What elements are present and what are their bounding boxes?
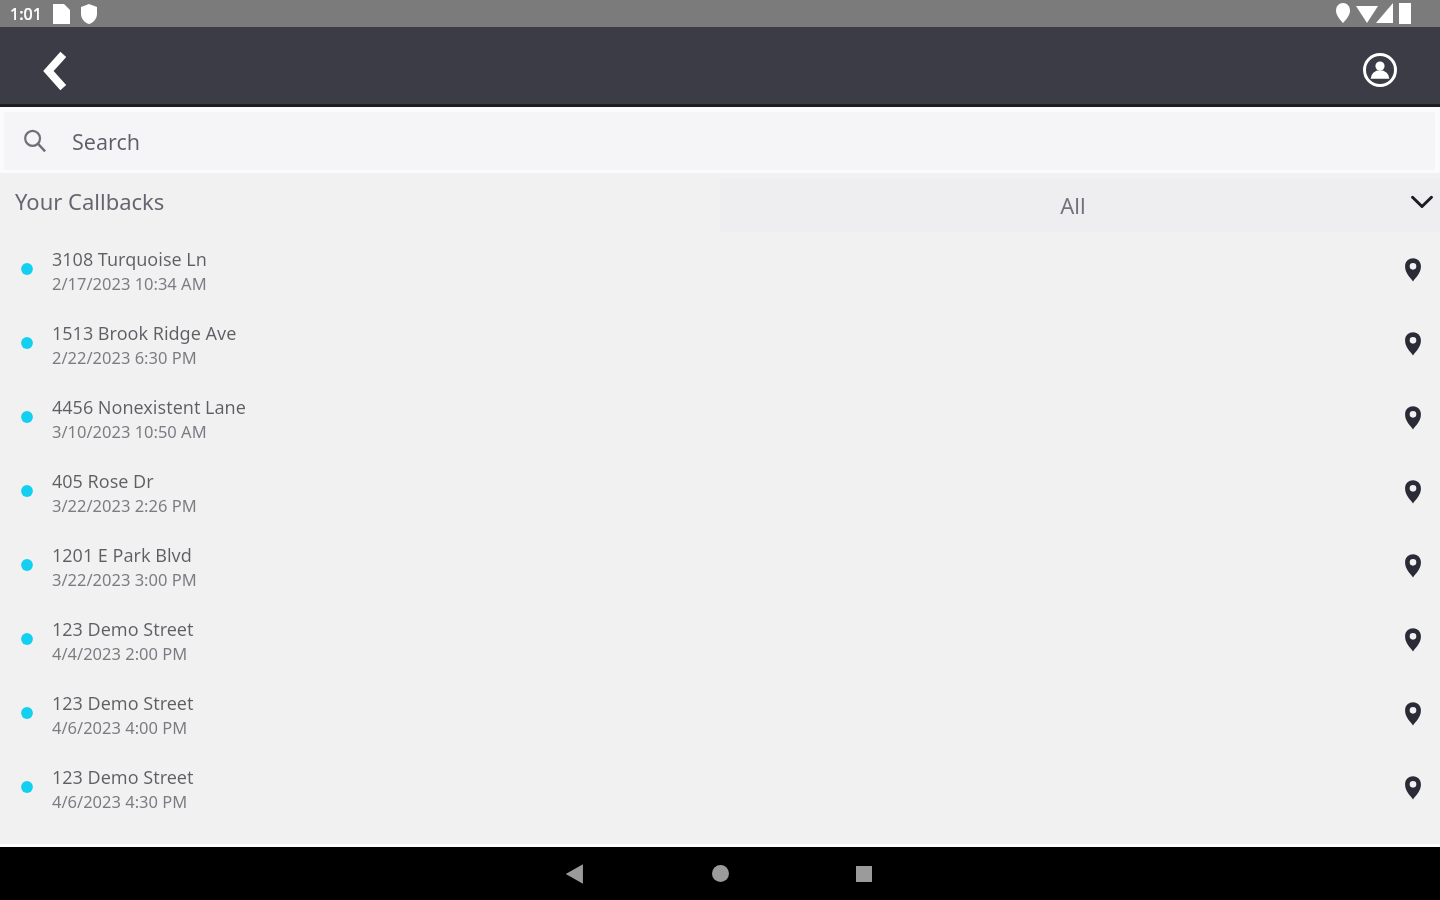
button[interactable]: Show on map [1390,394,1436,440]
staticText: 123 Demo Street [52,765,194,789]
button[interactable]: All [720,179,1440,232]
button[interactable]: 123 Demo Street [0,602,1440,676]
button[interactable]: Show on map [1390,542,1436,588]
staticText: 4/6/2023 4:30 PM [52,790,188,812]
button[interactable]: 4456 Nonexistent Lane [0,380,1440,454]
staticText: Your Callbacks [15,186,165,216]
staticText: 4/4/2023 2:00 PM [52,642,188,664]
button[interactable]: 3108 Turquoise Ln [0,232,1440,306]
button[interactable]: Show on map [1390,468,1436,514]
button[interactable]: Show on map [1390,690,1436,736]
staticText: 1201 E Park Blvd [52,543,192,567]
staticText: 3/22/2023 3:00 PM [52,568,197,590]
button[interactable]: Show on map [1390,246,1436,292]
button[interactable]: Back [28,43,84,99]
staticText: 4456 Nonexistent Lane [52,395,246,419]
staticText: 405 Rose Dr [52,469,154,493]
staticText: All [1060,190,1086,220]
button[interactable]: Account [1355,45,1405,95]
button[interactable]: Back [546,847,606,900]
staticText: 123 Demo Street [52,691,194,715]
staticText: 1:01 [10,3,42,25]
button[interactable]: 1513 Brook Ridge Ave [0,306,1440,380]
button[interactable]: Show on map [1390,616,1436,662]
staticText: 2/22/2023 6:30 PM [52,346,197,368]
staticText: 4/6/2023 4:00 PM [52,716,188,738]
button[interactable]: Show on map [1390,764,1436,810]
staticText: 123 Demo Street [52,617,194,641]
staticText: 2/17/2023 10:34 AM [52,272,207,294]
button[interactable]: Recent apps [834,847,894,900]
staticText: Search [72,127,141,156]
button[interactable]: 123 Demo Street [0,676,1440,750]
staticText: 1513 Brook Ridge Ave [52,321,237,345]
button[interactable]: 1201 E Park Blvd [0,528,1440,602]
button[interactable]: 405 Rose Dr [0,454,1440,528]
staticText: 3108 Turquoise Ln [52,247,207,271]
staticText: 3/22/2023 2:26 PM [52,494,197,516]
button[interactable]: Show on map [1390,320,1436,366]
button[interactable]: 123 Demo Street [0,750,1440,824]
staticText: 3/10/2023 10:50 AM [52,420,207,442]
button[interactable]: Home [690,847,750,900]
button[interactable]: Search [4,112,1435,170]
